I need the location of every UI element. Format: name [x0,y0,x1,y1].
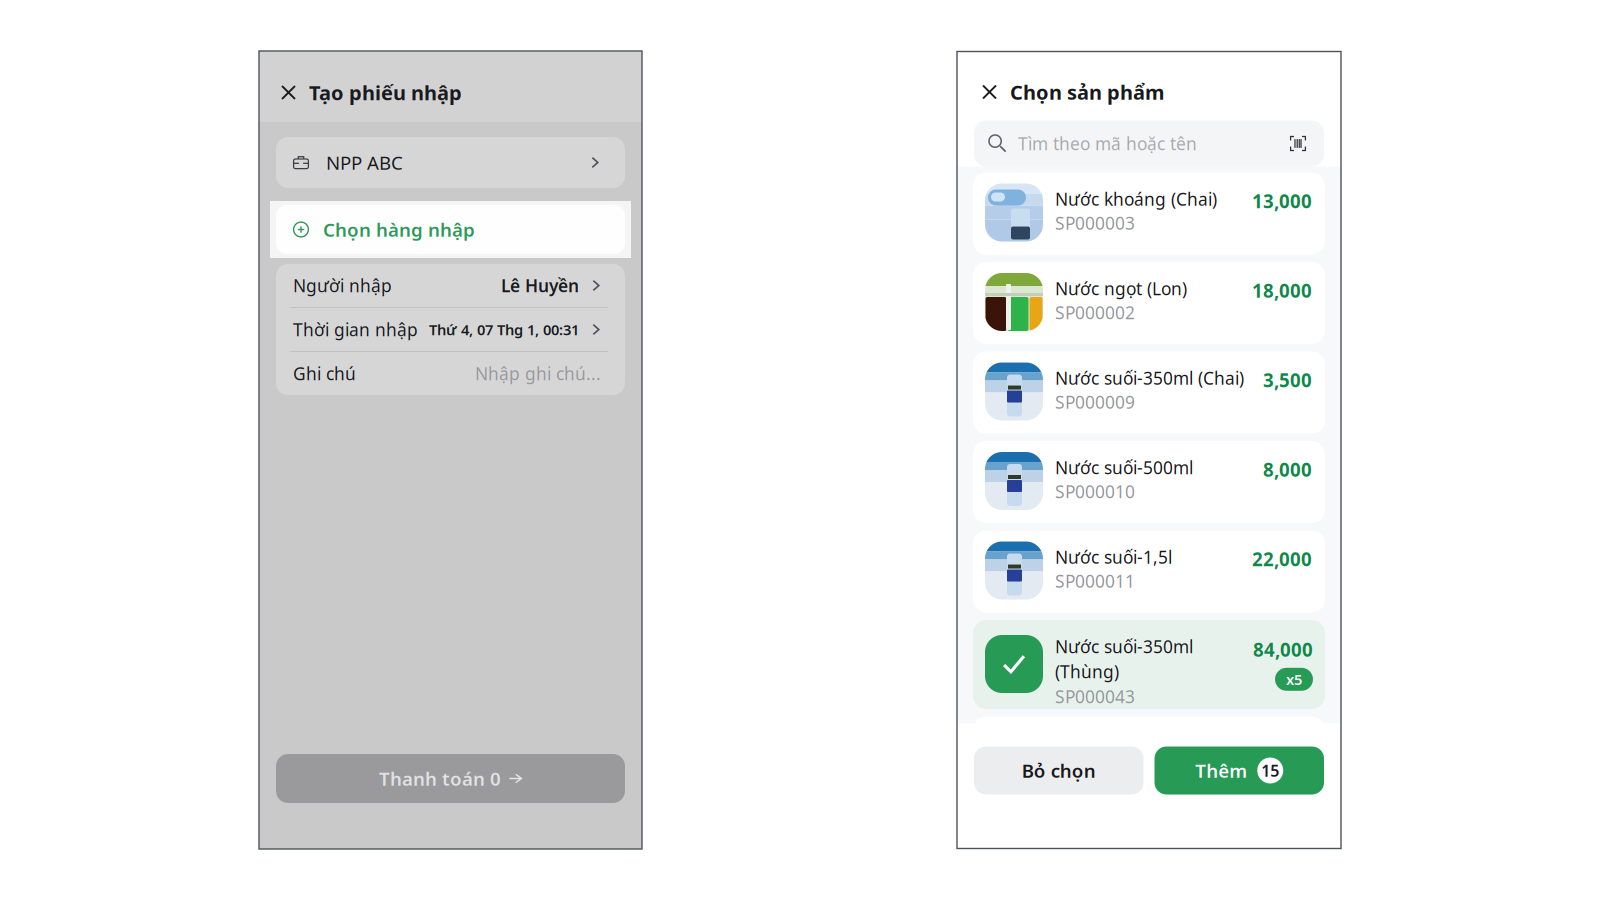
staticText: SP000010 [1055,480,1135,503]
button[interactable]: Ghi chú [276,352,625,395]
staticText: Chọn sản phẩm [1010,79,1165,105]
button[interactable]: Nước suối-1,5l [973,530,1325,612]
staticText: Lê Huyền [501,274,579,297]
staticText: Thứ 4, 07 Thg 1, 00:31 [429,320,579,339]
button[interactable]: Close [977,79,1002,104]
button[interactable]: Chọn hàng nhập [259,201,642,258]
staticText: 84,000 [1253,637,1313,662]
staticText: Nước suối-350ml (Chai) [1055,366,1244,389]
staticText: SP000043 [1055,685,1135,708]
button[interactable]: Scan barcode [1286,131,1310,155]
staticText: 3,500 [1263,367,1312,392]
staticText: SP000003 [1055,211,1135,234]
button[interactable]: Thanh toán 0 [259,754,642,803]
staticText: SP000009 [1055,390,1135,413]
staticText: Ghi chú [293,362,356,385]
button[interactable]: Nước khoáng (Chai) [973,172,1325,254]
staticText: Thời gian nhập [293,318,418,341]
staticText: SP000002 [1055,301,1135,324]
button[interactable]: Close [276,80,301,105]
button[interactable]: Thời gian nhập [276,308,625,351]
staticText: NPP ABC [326,150,403,175]
staticText: 13,000 [1252,188,1312,213]
staticText: Người nhập [293,274,392,297]
button[interactable]: Người nhập [276,264,625,307]
staticText: 8,000 [1263,457,1312,482]
button[interactable]: Nước suối-350ml (Chai) [973,351,1325,433]
staticText: x5 [1286,670,1302,689]
staticText: Thanh toán 0 [379,766,501,791]
staticText: 18,000 [1252,278,1312,303]
staticText: Nước suối-500ml [1055,456,1193,479]
staticText: Chọn hàng nhập [323,217,475,242]
button[interactable]: Bỏ chọn [974,746,1143,794]
staticText: 15 [1261,760,1279,781]
staticText: Nhập ghi chú... [475,362,601,385]
button[interactable]: Nước suối-350ml [973,620,1325,709]
staticText: Nước suối-350ml [1055,635,1193,658]
staticText: Tìm theo mã hoặc tên [1018,132,1197,155]
button[interactable]: Thêm [1154,746,1324,794]
staticText: Tạo phiếu nhập [309,79,462,106]
staticText: Nước khoáng (Chai) [1055,187,1217,210]
staticText: 22,000 [1252,546,1312,571]
staticText: Bỏ chọn [1022,758,1096,783]
staticText: Nước ngọt (Lon) [1055,277,1187,300]
button[interactable]: Nước suối-500ml [973,441,1325,523]
staticText: SP000011 [1055,569,1135,592]
button[interactable]: NPP ABC [259,137,642,188]
button[interactable]: Nước ngọt (Lon) [973,262,1325,344]
staticText: Nước suối-1,5l [1055,545,1172,568]
staticText: Thêm [1195,758,1247,783]
staticText: (Thùng) [1055,660,1119,683]
